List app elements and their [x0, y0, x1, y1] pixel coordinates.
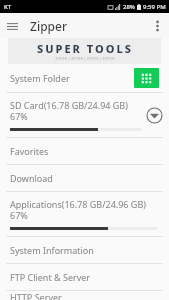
staticText: 9:59 PM	[143, 3, 166, 11]
button[interactable]: Open navigation drawer	[0, 14, 24, 38]
staticText: ZIPPER | ZIPPER | ZIPPER | ZIPPER	[55, 57, 115, 61]
staticText: Zipper	[30, 18, 67, 34]
staticText: KT	[4, 3, 12, 11]
button[interactable]: System Information	[0, 237, 169, 263]
other: Grid view	[134, 68, 159, 88]
staticText: SD Card(16.78 GB/24.94 GB) 67%	[10, 99, 142, 122]
staticText: System Folder	[10, 72, 70, 84]
button[interactable]: FTP Client & Server	[0, 264, 169, 290]
staticText: HTTP Server	[10, 291, 62, 300]
staticText: Download	[10, 172, 53, 184]
staticText: FTP Client & Server	[10, 271, 91, 283]
staticText: SUPER TOOLS	[37, 41, 133, 56]
button[interactable]: Applications(16.78 GB/24.96 GB) 67%	[0, 192, 169, 236]
staticText: Applications(16.78 GB/24.96 GB) 67%	[10, 198, 163, 221]
button[interactable]: More options	[145, 14, 169, 38]
button[interactable]: System Folder	[0, 64, 169, 92]
button[interactable]: SD Card(16.78 GB/24.94 GB) 67%	[0, 93, 169, 137]
button[interactable]: Expand	[146, 107, 163, 124]
button[interactable]: Favorites	[0, 138, 169, 164]
staticText: System Information	[10, 244, 94, 256]
button[interactable]: HTTP Server	[0, 291, 169, 300]
button[interactable]: Download	[0, 165, 169, 191]
staticText: Favorites	[10, 145, 49, 157]
staticText: 28%	[123, 3, 135, 11]
